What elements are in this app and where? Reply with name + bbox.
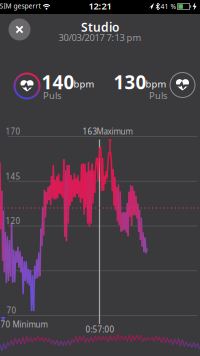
staticText: 145 — [5, 171, 20, 182]
staticText: 0:57:00 — [85, 324, 114, 335]
staticText: 95 — [6, 260, 16, 271]
staticText: 70 Minimum — [0, 319, 47, 330]
staticText: 170 — [5, 126, 20, 137]
staticText: 140 — [41, 70, 74, 94]
staticText: 12:21 — [88, 0, 111, 12]
staticText: bpm — [145, 78, 166, 90]
staticText: 163 — [82, 126, 97, 137]
staticText: bpm — [73, 78, 94, 90]
staticText: SIM gesperrt — [0, 2, 40, 10]
staticText: 30/03/2017 7:13 pm — [58, 31, 141, 44]
staticText: 130 — [113, 70, 146, 94]
button[interactable]: Close — [0, 0, 200, 356]
staticText: 70 — [6, 305, 16, 316]
staticText: Studio — [81, 19, 119, 35]
staticText: 120 — [5, 216, 20, 226]
staticText: 41 % — [160, 2, 176, 11]
staticText: Maximum — [96, 126, 132, 137]
staticText: Puls — [149, 89, 167, 102]
staticText: Puls — [43, 89, 61, 102]
